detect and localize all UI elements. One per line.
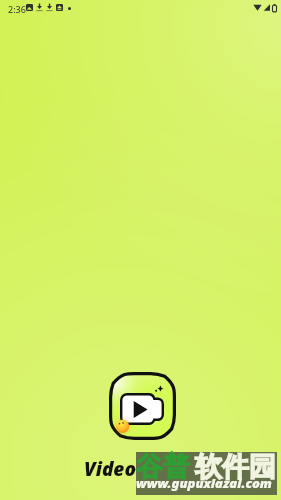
- staticText: 软件园: [195, 450, 276, 484]
- button[interactable]: Video Editor app icon: [105, 368, 181, 444]
- staticText: 谷普: [136, 450, 190, 484]
- staticText: Video Editor: [84, 456, 198, 482]
- staticText: 2:36: [8, 3, 26, 15]
- staticText: www.gupuxlazai.com: [136, 474, 272, 492]
